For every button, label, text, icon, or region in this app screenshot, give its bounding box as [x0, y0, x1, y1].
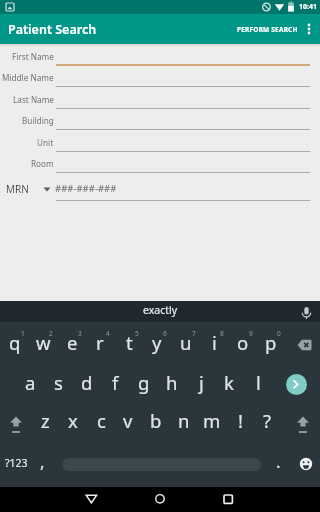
staticText: Patient Search: [8, 21, 97, 38]
button[interactable]: [302, 14, 320, 44]
button[interactable]: w: [29, 329, 57, 355]
button[interactable]: MRN: [6, 182, 46, 195]
staticText: h: [166, 370, 178, 395]
staticText: m: [203, 408, 221, 433]
staticText: First Name: [12, 51, 54, 62]
button[interactable]: y: [143, 329, 171, 355]
staticText: l: [256, 370, 261, 395]
staticText: 5: [135, 329, 139, 338]
button[interactable]: [286, 374, 307, 395]
staticText: !: [238, 408, 243, 433]
staticText: f: [112, 370, 119, 395]
staticText: exactly: [143, 303, 178, 317]
staticText: ?: [263, 408, 272, 433]
button[interactable]: e: [58, 329, 86, 355]
button[interactable]: n: [170, 407, 198, 433]
staticText: x: [68, 408, 78, 433]
button[interactable]: i: [200, 329, 228, 355]
button[interactable]: p: [257, 329, 285, 355]
button[interactable]: ?: [253, 407, 281, 433]
button[interactable]: a: [16, 369, 44, 395]
staticText: u: [180, 330, 192, 355]
staticText: MRN: [6, 182, 29, 195]
button[interactable]: j: [187, 369, 215, 395]
staticText: y: [152, 330, 162, 355]
staticText: .: [276, 450, 281, 473]
staticText: d: [81, 370, 93, 395]
staticText: c: [97, 408, 106, 433]
button[interactable]: d: [73, 369, 101, 395]
staticText: ,: [40, 450, 45, 473]
button[interactable]: [291, 333, 319, 357]
button[interactable]: l: [244, 369, 272, 395]
staticText: PERFORM SEARCH: [237, 25, 298, 34]
button[interactable]: k: [215, 369, 243, 395]
button[interactable]: ?123: [2, 450, 30, 476]
staticText: 2: [49, 329, 53, 338]
staticText: Last Name: [13, 94, 54, 105]
staticText: 0: [277, 329, 281, 338]
button[interactable]: s: [44, 369, 72, 395]
button[interactable]: exactly: [143, 303, 178, 317]
button[interactable]: v: [114, 407, 142, 433]
button[interactable]: ###-###-###: [55, 182, 117, 195]
staticText: o: [237, 330, 249, 355]
button[interactable]: m: [198, 407, 226, 433]
staticText: Building: [22, 115, 54, 126]
staticText: r: [96, 330, 104, 355]
button[interactable]: [4, 411, 28, 435]
button[interactable]: o: [229, 329, 257, 355]
button[interactable]: x: [59, 407, 87, 433]
button[interactable]: .: [264, 448, 292, 474]
button[interactable]: q: [1, 329, 29, 355]
button[interactable]: h: [158, 369, 186, 395]
button[interactable]: g: [130, 369, 158, 395]
staticText: 6: [163, 329, 167, 338]
staticText: g: [138, 370, 150, 395]
button[interactable]: t: [115, 329, 143, 355]
staticText: s: [54, 370, 63, 395]
staticText: 7: [192, 329, 196, 338]
staticText: w: [36, 330, 51, 355]
button[interactable]: z: [31, 407, 59, 433]
button[interactable]: [106, 487, 213, 512]
button[interactable]: [213, 487, 320, 512]
button[interactable]: [291, 411, 315, 435]
staticText: 4: [106, 329, 110, 338]
staticText: z: [41, 408, 50, 433]
button[interactable]: !: [226, 407, 254, 433]
staticText: i: [212, 330, 217, 355]
button[interactable]: [295, 453, 317, 475]
button[interactable]: [0, 487, 106, 512]
staticText: b: [150, 408, 162, 433]
staticText: 9: [249, 329, 253, 338]
button[interactable]: u: [172, 329, 200, 355]
staticText: 1: [21, 329, 25, 338]
staticText: Room: [31, 158, 54, 169]
button[interactable]: b: [142, 407, 170, 433]
staticText: Unit: [37, 137, 54, 148]
staticText: 10:41: [299, 2, 317, 12]
button[interactable]: f: [101, 369, 129, 395]
staticText: ###-###-###: [55, 182, 117, 195]
staticText: k: [224, 370, 234, 395]
staticText: a: [25, 370, 36, 395]
staticText: Middle Name: [2, 72, 54, 83]
staticText: 8: [220, 329, 224, 338]
staticText: ?123: [5, 456, 28, 470]
button[interactable]: c: [87, 407, 115, 433]
button[interactable]: ,: [28, 448, 56, 474]
staticText: v: [123, 408, 133, 433]
button[interactable]: r: [86, 329, 114, 355]
staticText: e: [67, 330, 78, 355]
staticText: q: [9, 330, 21, 355]
button[interactable]: [296, 301, 320, 322]
button[interactable]: PERFORM SEARCH: [233, 17, 302, 42]
